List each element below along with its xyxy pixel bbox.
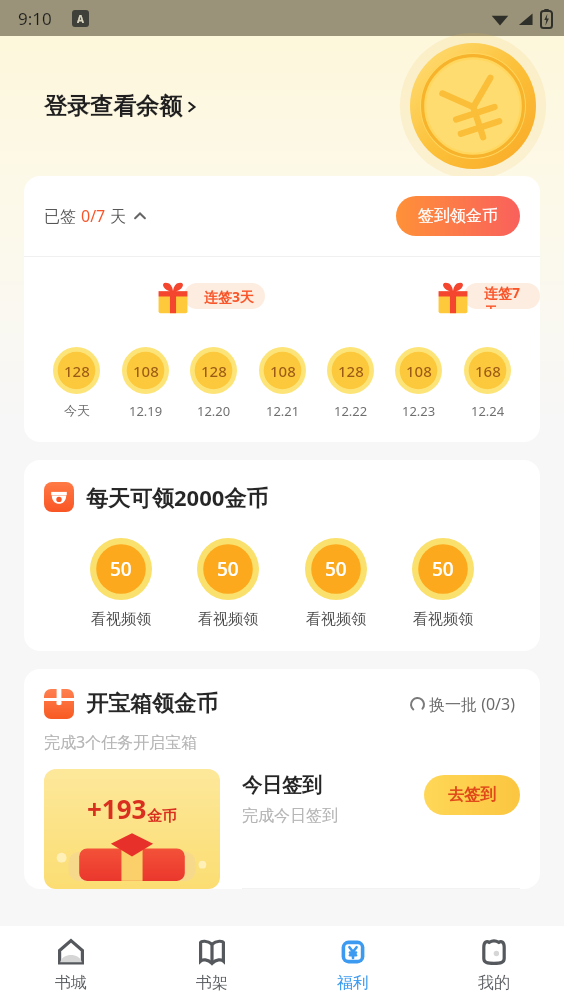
staticText: 天: [106, 205, 127, 227]
button[interactable]: 福利: [282, 926, 423, 1004]
button[interactable]: 108: [259, 347, 306, 420]
button[interactable]: 书架: [141, 926, 282, 1004]
staticText: 168: [475, 361, 501, 381]
staticText: 完成3个任务开启宝箱: [44, 731, 198, 753]
button[interactable]: 128: [190, 347, 237, 420]
button[interactable]: 已签: [44, 199, 147, 233]
button[interactable]: 书城: [0, 926, 141, 1004]
staticText: 12.24: [471, 402, 505, 420]
button[interactable]: 我的: [423, 926, 564, 1004]
button[interactable]: 50: [412, 538, 474, 629]
staticText: 金币: [147, 807, 177, 826]
staticText: 看视频领: [91, 610, 151, 629]
button[interactable]: 签到领金币: [396, 196, 520, 236]
staticText: 128: [201, 361, 227, 381]
staticText: 换一批 (0/3): [429, 693, 516, 715]
staticText: 看视频领: [413, 610, 473, 629]
staticText: 每天可领2000金币: [86, 482, 269, 512]
staticText: 50: [325, 556, 347, 582]
button[interactable]: 50: [90, 538, 152, 629]
staticText: 连签3天: [204, 287, 255, 306]
staticText: 50: [432, 556, 454, 582]
button[interactable]: 去签到: [424, 775, 520, 815]
staticText: 看视频领: [306, 610, 366, 629]
staticText: 我的: [478, 973, 510, 993]
staticText: 108: [133, 361, 159, 381]
staticText: 去签到: [448, 785, 496, 805]
staticText: 今日签到: [242, 773, 322, 798]
button[interactable]: 108: [122, 347, 169, 420]
button[interactable]: 128: [53, 347, 100, 418]
button[interactable]: 登录查看余额: [44, 86, 199, 127]
staticText: 12.20: [197, 402, 231, 420]
staticText: 看视频领: [198, 610, 258, 629]
staticText: 108: [270, 361, 296, 381]
staticText: 128: [338, 361, 364, 381]
staticText: 完成今日签到: [242, 806, 338, 826]
button[interactable]: 50: [197, 538, 259, 629]
staticText: +193: [87, 791, 147, 826]
staticText: 开宝箱领金币: [86, 690, 218, 718]
staticText: 已签: [44, 205, 81, 227]
staticText: 50: [110, 556, 132, 582]
staticText: 书架: [196, 973, 228, 993]
staticText: 书城: [55, 973, 87, 993]
staticText: 12.22: [334, 402, 368, 420]
button[interactable]: 128: [327, 347, 374, 420]
staticText: 福利: [337, 973, 369, 993]
staticText: 50: [217, 556, 239, 582]
staticText: A: [77, 12, 84, 26]
button[interactable]: 换一批 (0/3): [405, 689, 520, 719]
staticText: 签到领金币: [418, 206, 498, 226]
staticText: 108: [406, 361, 432, 381]
staticText: 登录查看余额: [44, 92, 182, 121]
button[interactable]: 50: [305, 538, 367, 629]
staticText: 今天: [64, 402, 90, 418]
staticText: 12.21: [266, 402, 300, 420]
button[interactable]: 108: [395, 347, 442, 420]
staticText: 128: [64, 361, 90, 381]
button[interactable]: 168: [464, 347, 511, 420]
staticText: 12.23: [402, 402, 436, 420]
staticText: 连签7天: [484, 283, 530, 309]
staticText: 0/7: [81, 205, 106, 227]
staticText: 12.19: [129, 402, 163, 420]
staticText: 9:10: [18, 7, 52, 30]
